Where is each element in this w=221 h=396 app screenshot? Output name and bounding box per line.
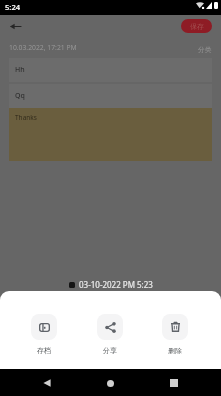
staticText: 10.03.2022, 17:21 PM (9, 43, 77, 52)
staticText: 保存 (190, 22, 204, 31)
button[interactable]: 分享 (77, 314, 142, 355)
button[interactable]: 存档 (11, 314, 77, 355)
staticText: Hh (15, 65, 25, 75)
button[interactable]: Recent apps (142, 373, 206, 393)
staticText: Thanks (15, 113, 37, 122)
button[interactable]: Back (15, 373, 78, 393)
staticText: 5:24 (5, 2, 21, 12)
button[interactable]: Home (78, 373, 142, 393)
staticText: 删除 (168, 346, 182, 355)
button[interactable]: 保存 (181, 19, 212, 33)
staticText: 分享 (103, 346, 117, 355)
staticText: 存档 (37, 346, 51, 355)
staticText: 分类 (198, 45, 212, 54)
staticText: Qq (15, 91, 25, 101)
button[interactable]: 分类 (198, 45, 212, 54)
button[interactable]: 删除 (142, 314, 207, 355)
button[interactable]: Back (6, 17, 24, 35)
staticText: 03-10-2022 PM 5:23 (79, 279, 153, 290)
